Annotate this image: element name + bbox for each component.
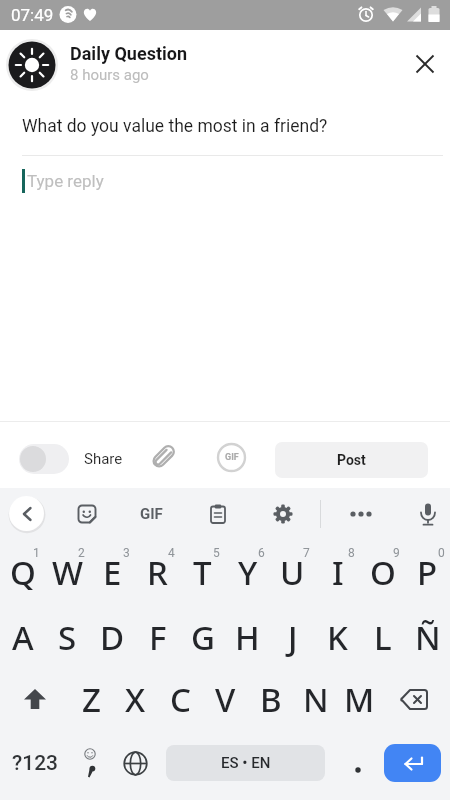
staticText: 2 xyxy=(78,546,85,560)
button[interactable]: D xyxy=(90,606,135,669)
button[interactable] xyxy=(112,732,158,794)
staticText: M xyxy=(344,677,375,722)
staticText: GIF xyxy=(140,505,163,523)
button[interactable] xyxy=(347,500,375,528)
button[interactable]: R xyxy=(135,541,180,603)
button[interactable]: M xyxy=(337,668,382,730)
staticText: Type reply xyxy=(27,171,104,191)
staticText: P xyxy=(417,550,438,595)
button[interactable]: C xyxy=(158,668,203,730)
button[interactable] xyxy=(8,668,62,730)
staticText: 1 xyxy=(33,546,40,560)
button[interactable]: Ñ xyxy=(405,606,450,669)
staticText: 5 xyxy=(213,546,220,560)
button[interactable]: Q xyxy=(0,541,45,603)
button[interactable]: O xyxy=(360,541,405,603)
staticText: R xyxy=(147,550,168,595)
staticText: Daily Question xyxy=(70,43,188,64)
button[interactable] xyxy=(269,500,297,528)
button[interactable] xyxy=(19,444,69,474)
button[interactable]: Post xyxy=(275,442,428,478)
button[interactable] xyxy=(73,500,101,528)
staticText: 8 xyxy=(348,546,355,560)
button[interactable]: J xyxy=(270,606,315,669)
staticText: L xyxy=(374,615,392,660)
staticText: X xyxy=(125,677,146,722)
staticText: B xyxy=(260,677,282,722)
button[interactable]: L xyxy=(360,606,405,669)
button[interactable]: H xyxy=(225,606,270,669)
staticText: U xyxy=(280,550,305,595)
button[interactable]: T xyxy=(180,541,225,603)
staticText: O xyxy=(370,550,396,595)
staticText: K xyxy=(327,615,348,660)
button[interactable]: G xyxy=(180,606,225,669)
button[interactable] xyxy=(414,500,442,528)
button[interactable]: V xyxy=(203,668,248,730)
button[interactable]: ES • EN xyxy=(166,745,325,781)
button[interactable]: S xyxy=(45,606,90,669)
button[interactable]: B xyxy=(248,668,293,730)
staticText: 4 xyxy=(168,546,175,560)
staticText: J xyxy=(288,615,298,660)
button[interactable]: X xyxy=(113,668,158,730)
staticText: 0 xyxy=(438,546,445,560)
staticText: GIF xyxy=(225,452,239,463)
button[interactable]: E xyxy=(90,541,135,603)
staticText: A xyxy=(12,615,34,660)
staticText: T xyxy=(193,550,212,595)
button[interactable] xyxy=(384,744,441,782)
staticText: Q xyxy=(10,550,36,595)
button[interactable]: P xyxy=(405,541,450,603)
staticText: V xyxy=(215,677,236,722)
staticText: F xyxy=(149,615,167,660)
staticText: 07:49 xyxy=(11,5,54,25)
staticText: 7 xyxy=(303,546,310,560)
staticText: Ñ xyxy=(415,615,441,660)
staticText: 8 hours ago xyxy=(70,66,149,84)
button[interactable] xyxy=(9,496,44,531)
staticText: Post xyxy=(337,452,366,468)
button[interactable]: W xyxy=(45,541,90,603)
staticText: D xyxy=(100,615,125,660)
button[interactable]: A xyxy=(0,606,45,669)
button[interactable] xyxy=(405,44,445,84)
button[interactable]: I xyxy=(315,541,360,603)
button[interactable] xyxy=(345,750,371,790)
button[interactable]: GIF xyxy=(216,442,247,473)
button[interactable]: K xyxy=(315,606,360,669)
staticText: Y xyxy=(238,550,258,595)
button[interactable]: GIF xyxy=(133,505,169,523)
staticText: 9 xyxy=(393,546,400,560)
button[interactable] xyxy=(204,500,232,528)
staticText: What do you value the most in a friend? xyxy=(22,116,328,137)
staticText: S xyxy=(58,615,77,660)
staticText: 3 xyxy=(123,546,130,560)
staticText: E xyxy=(103,550,122,595)
button[interactable]: Z xyxy=(69,668,114,730)
staticText: Share xyxy=(84,450,123,468)
button[interactable]: U xyxy=(270,541,315,603)
button[interactable]: Y xyxy=(225,541,270,603)
button[interactable] xyxy=(68,732,113,794)
staticText: Z xyxy=(82,677,101,722)
button[interactable] xyxy=(144,438,182,476)
staticText: H xyxy=(235,615,260,660)
button[interactable] xyxy=(387,668,441,730)
button[interactable]: F xyxy=(135,606,180,669)
staticText: C xyxy=(170,677,191,722)
staticText: ES • EN xyxy=(221,754,271,772)
button[interactable]: N xyxy=(293,668,338,730)
staticText: W xyxy=(52,550,84,595)
staticText: I xyxy=(332,550,344,595)
staticText: G xyxy=(191,615,215,660)
staticText: ?123 xyxy=(12,751,59,776)
staticText: 6 xyxy=(258,546,265,560)
staticText: N xyxy=(303,677,329,722)
button[interactable]: ?123 xyxy=(6,732,64,794)
